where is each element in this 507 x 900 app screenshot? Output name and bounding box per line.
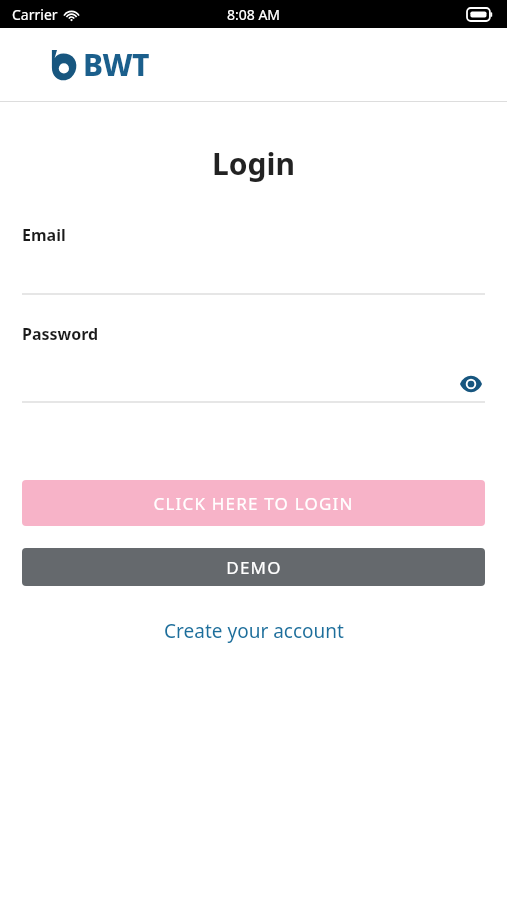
staticText: Email <box>22 224 66 246</box>
button[interactable]: CLICK HERE TO LOGIN <box>22 480 485 526</box>
staticText: BWT <box>83 44 150 85</box>
button[interactable]: Create your account <box>0 618 507 644</box>
staticText: Carrier <box>12 5 58 24</box>
staticText: 8:08 AM <box>227 5 281 24</box>
staticText: Login <box>212 143 295 184</box>
staticText: Password <box>22 323 99 345</box>
staticText: DEMO <box>226 556 282 579</box>
staticText: CLICK HERE TO LOGIN <box>153 492 354 515</box>
button[interactable]: DEMO <box>22 548 485 586</box>
button[interactable]: Show password <box>457 370 485 398</box>
staticText: Create your account <box>164 618 344 644</box>
